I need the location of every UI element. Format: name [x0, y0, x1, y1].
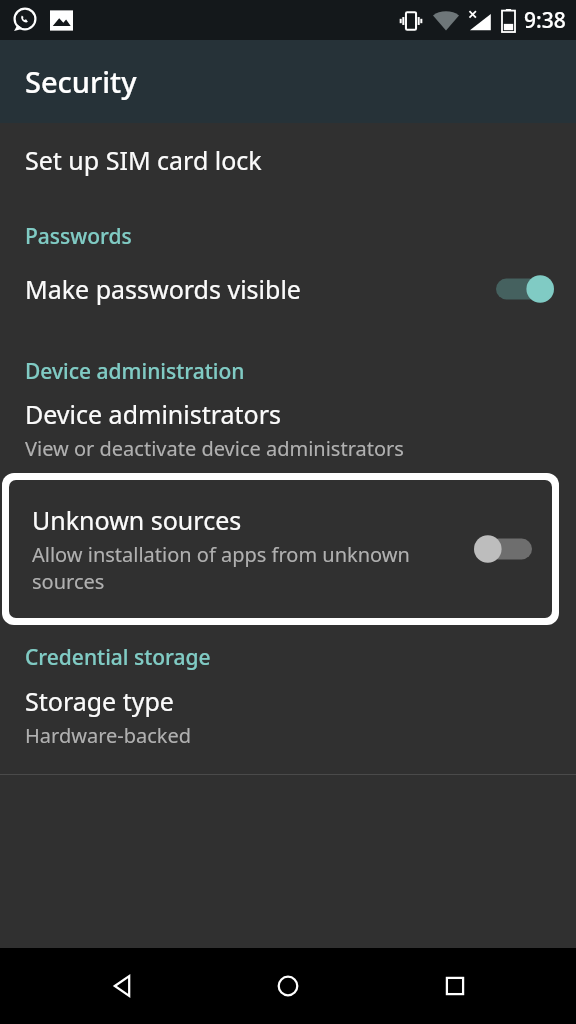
staticText: Credential storage — [25, 643, 211, 672]
staticText: Security — [25, 62, 137, 101]
staticText: Unknown sources — [32, 503, 242, 537]
staticText: View or deactivate device administrators — [25, 435, 404, 462]
button[interactable]: Recent apps — [410, 948, 500, 1024]
button[interactable]: Storage type — [0, 672, 576, 760]
staticText: Device administrators — [25, 397, 282, 431]
button[interactable]: Set up SIM card lock — [0, 123, 576, 196]
staticText: Storage type — [25, 684, 174, 718]
staticText: Hardware-backed — [25, 722, 192, 749]
staticText: Make passwords visible — [25, 272, 301, 306]
button[interactable]: Make passwords visible — [0, 251, 576, 327]
staticText: Set up SIM card lock — [25, 143, 262, 177]
staticText: 9:38 — [524, 6, 566, 35]
staticText: Passwords — [25, 222, 132, 251]
button[interactable]: Unknown sources — [9, 480, 552, 618]
button[interactable]: Device administrators — [0, 386, 576, 472]
button[interactable]: Home — [243, 948, 333, 1024]
staticText: Allow installation of apps from unknown … — [32, 541, 466, 595]
staticText: Device administration — [25, 357, 245, 386]
button[interactable]: Back — [77, 948, 167, 1024]
